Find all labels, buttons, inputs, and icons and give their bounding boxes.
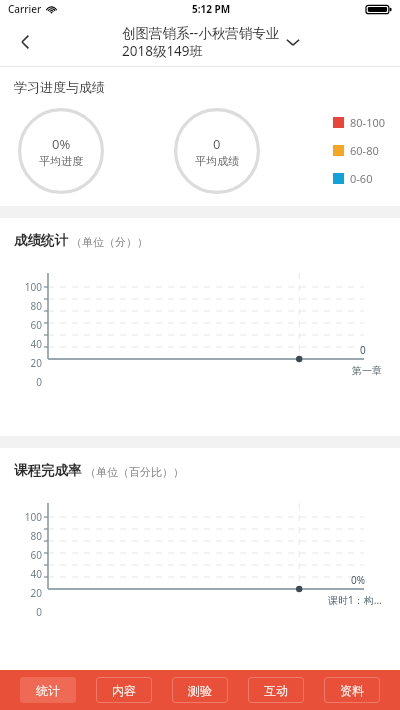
button[interactable]: Expand class selector — [282, 31, 304, 53]
staticText: 80 — [10, 529, 42, 543]
staticText: 第一章 — [352, 364, 382, 377]
button[interactable]: 统计 — [20, 677, 76, 703]
button[interactable]: 互动 — [248, 677, 304, 703]
staticText: 内容 — [112, 683, 136, 698]
staticText: 0 — [10, 605, 42, 617]
staticText: 80-100 — [350, 115, 386, 130]
staticText: 成绩统计 — [14, 232, 68, 249]
staticText: 课时1：构... — [328, 593, 382, 607]
staticText: 创图营销系--小秋营销专业 — [122, 24, 280, 42]
staticText: 2018级149班 — [122, 42, 204, 60]
staticText: 0 — [10, 375, 42, 387]
staticText: 100 — [10, 280, 42, 294]
button[interactable]: 测验 — [172, 677, 228, 703]
staticText: 测验 — [188, 683, 212, 698]
staticText: 0% — [52, 135, 71, 153]
button[interactable]: 资料 — [324, 677, 380, 703]
staticText: 资料 — [340, 683, 364, 698]
staticText: 0% — [351, 573, 366, 587]
staticText: 平均成绩 — [195, 154, 239, 168]
staticText: 100 — [10, 510, 42, 524]
staticText: 40 — [10, 567, 42, 581]
staticText: （单位（百分比）） — [85, 465, 184, 479]
staticText: 20 — [10, 356, 42, 370]
staticText: 平均进度 — [39, 154, 83, 168]
staticText: 0 — [360, 343, 366, 357]
staticText: 60-80 — [350, 143, 379, 158]
staticText: 60 — [10, 548, 42, 562]
staticText: 5:12 PM — [192, 2, 231, 16]
staticText: 0-60 — [350, 171, 373, 186]
staticText: 课程完成率 — [14, 462, 82, 479]
button[interactable]: Back — [0, 18, 52, 66]
staticText: 60 — [10, 318, 42, 332]
staticText: 0 — [213, 135, 221, 153]
staticText: 互动 — [264, 683, 288, 698]
button[interactable]: 内容 — [96, 677, 152, 703]
staticText: 20 — [10, 586, 42, 600]
staticText: 40 — [10, 337, 42, 351]
staticText: 学习进度与成绩 — [14, 79, 105, 95]
staticText: 80 — [10, 299, 42, 313]
staticText: Carrier — [8, 2, 42, 16]
staticText: （单位（分）） — [71, 235, 148, 249]
staticText: 统计 — [36, 683, 60, 698]
